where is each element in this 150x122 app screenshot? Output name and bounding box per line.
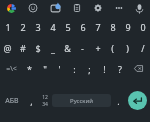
button[interactable]: . [111,79,125,122]
staticText: * [27,63,32,75]
button[interactable]: 4 [45,16,60,37]
button[interactable]: & [60,37,75,58]
button[interactable]: 12 [38,79,52,122]
staticText: : [73,63,76,75]
button[interactable]: Русский [52,94,111,107]
staticText: & [64,42,71,54]
button[interactable]: + [90,37,105,58]
button[interactable]: Emoji [22,0,44,16]
staticText: ( [111,42,114,54]
staticText: . [117,95,120,107]
button[interactable]: Clipboard [66,0,87,16]
button[interactable]: More options [108,0,129,16]
staticText: 1 [5,21,11,33]
button[interactable]: 2 [15,16,30,37]
staticText: 3 [35,21,41,33]
staticText: " [43,63,47,75]
staticText: ? [118,63,122,75]
button[interactable]: 0 [135,16,150,37]
button[interactable]: - [75,37,90,58]
button[interactable]: ; [82,58,97,79]
staticText: ' [58,63,61,75]
button[interactable]: / [135,37,150,58]
button[interactable]: 9 [120,16,135,37]
staticText: ! [103,63,106,75]
button[interactable]: " [37,58,52,79]
staticText: 2 [20,21,26,33]
button[interactable]: =\< [0,58,22,79]
button[interactable]: Settings [87,0,108,16]
staticText: 6 [80,21,86,33]
staticText: 9 [125,21,131,33]
staticText: # [20,42,26,54]
button[interactable]: 5 [60,16,75,37]
staticText: 7 [95,21,101,33]
button[interactable]: ? [112,58,127,79]
staticText: 12 [42,94,48,101]
staticText: @ [3,42,12,54]
button[interactable]: GIF [44,0,66,16]
button[interactable]: 8 [105,16,120,37]
button[interactable]: * [22,58,37,79]
staticText: ) [126,42,129,54]
button[interactable]: # [15,37,30,58]
staticText: 4 [50,21,56,33]
button[interactable]: Enter [128,91,147,110]
staticText: 34 [42,101,48,108]
staticText: 5 [65,21,71,33]
staticText: $ [35,42,41,54]
button[interactable]: _ [45,37,60,58]
staticText: - [81,42,84,54]
button[interactable]: 7 [90,16,105,37]
staticText: АБВ [5,96,19,106]
button[interactable]: ( [105,37,120,58]
staticText: 8 [110,21,116,33]
staticText: _ [51,42,55,54]
button[interactable]: @ [0,37,15,58]
button[interactable]: : [67,58,82,79]
staticText: , [30,95,33,107]
staticText: ; [88,63,91,75]
button[interactable]: Backspace [127,58,150,79]
staticText: Русский [70,97,93,105]
button[interactable]: Voice input [129,0,150,16]
button[interactable]: ' [52,58,67,79]
staticText: 0 [140,21,146,33]
button[interactable]: , [24,79,38,122]
staticText: + [95,42,101,54]
button[interactable]: 3 [30,16,45,37]
button[interactable]: АБВ [0,79,24,122]
button[interactable]: ) [120,37,135,58]
button[interactable]: $ [30,37,45,58]
staticText: / [141,42,145,54]
button[interactable]: 6 [75,16,90,37]
button[interactable]: Google [0,0,22,16]
button[interactable]: 1 [0,16,15,37]
button[interactable]: ! [97,58,112,79]
staticText: =\< [6,64,17,74]
